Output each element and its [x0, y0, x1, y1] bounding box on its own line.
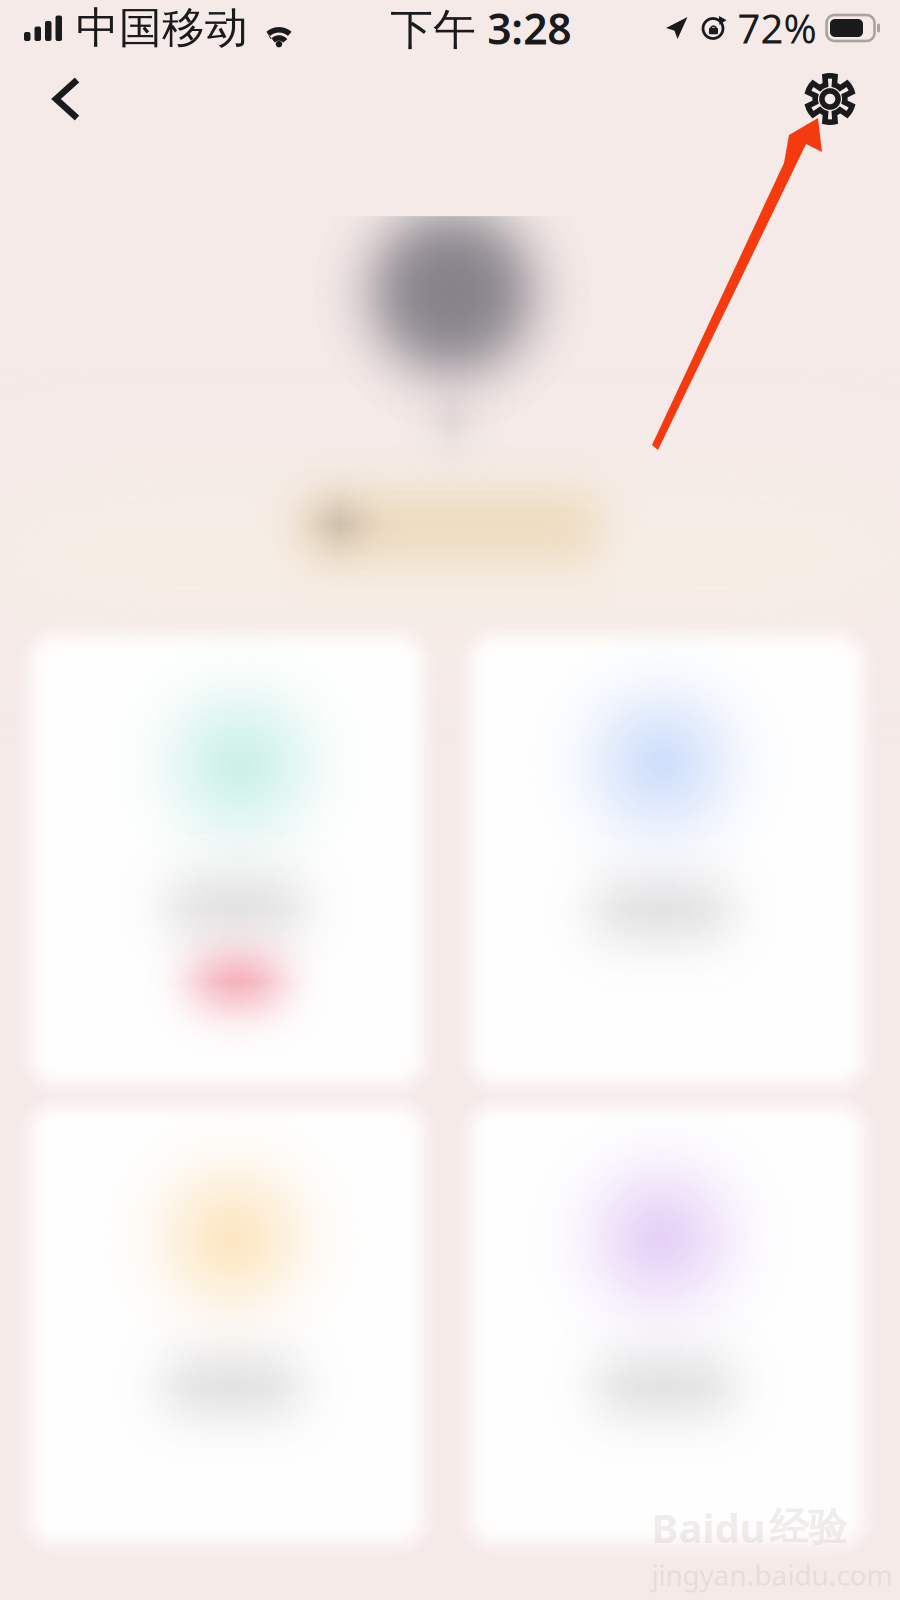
- button[interactable]: Card 1: [9, 615, 444, 1105]
- staticText: 经验: [769, 1504, 847, 1551]
- staticText: 中国移动: [76, 2, 248, 54]
- staticText: jingyan.baidu.com: [651, 1556, 892, 1593]
- button[interactable]: Card 2: [449, 615, 884, 1105]
- button[interactable]: Settings: [783, 56, 877, 142]
- staticText: Baidu: [651, 1501, 765, 1554]
- staticText: 72%: [737, 1, 816, 54]
- button[interactable]: Card 3: [9, 1085, 444, 1565]
- button[interactable]: Card 4: [449, 1085, 884, 1565]
- button[interactable]: Back: [23, 56, 111, 142]
- staticText: 下午 3:28: [390, 0, 571, 56]
